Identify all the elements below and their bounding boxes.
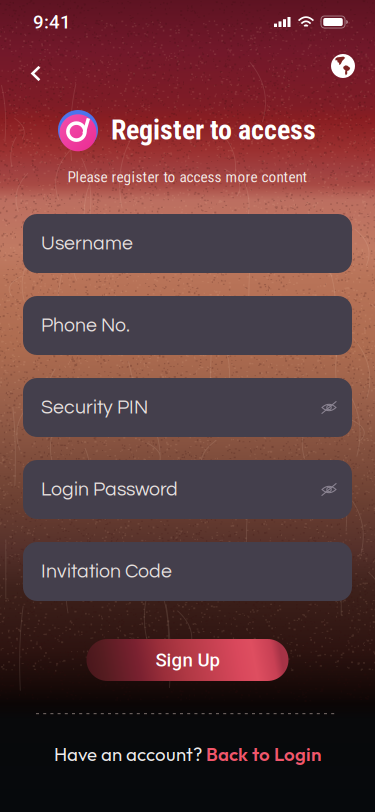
button[interactable]: Sign Up [86, 639, 288, 681]
staticText: 9:41 [33, 11, 71, 33]
staticText: Please register to access more content [67, 168, 307, 186]
button[interactable]: Back [14, 51, 58, 95]
button[interactable]: Invitation Code [23, 542, 352, 601]
staticText: Have an account? [54, 742, 206, 766]
button[interactable]: Back to Login [206, 742, 321, 766]
button[interactable]: Login Password [23, 460, 352, 519]
staticText: Login Password [41, 479, 178, 499]
staticText: Register to access [111, 114, 316, 146]
staticText: Security PIN [41, 397, 148, 417]
staticText: Phone No. [41, 315, 130, 335]
button[interactable]: Language [321, 44, 365, 88]
staticText: Sign Up [155, 649, 219, 671]
button[interactable]: Username [23, 214, 352, 273]
button[interactable]: Security PIN [23, 378, 352, 437]
staticText: Invitation Code [41, 561, 172, 581]
staticText: Username [41, 233, 133, 253]
staticText: Back to Login [206, 742, 321, 766]
button[interactable]: Phone No. [23, 296, 352, 355]
